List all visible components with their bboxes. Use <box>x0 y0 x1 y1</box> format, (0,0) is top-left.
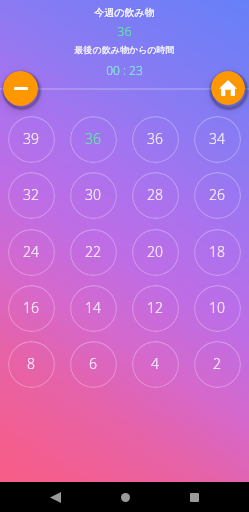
button[interactable]: 36 <box>70 116 117 163</box>
button[interactable]: 36 <box>132 116 179 163</box>
button[interactable]: Home <box>110 482 140 512</box>
staticText: 18 <box>209 242 225 261</box>
button[interactable]: Remove a drink <box>3 71 38 106</box>
staticText: 26 <box>209 185 225 204</box>
staticText: 24 <box>23 242 39 261</box>
staticText: 8 <box>27 354 35 373</box>
staticText: 22 <box>85 242 101 261</box>
button[interactable]: 10 <box>194 285 241 332</box>
staticText: 20 <box>147 242 163 261</box>
staticText: 36 <box>85 129 101 148</box>
staticText: 14 <box>85 298 101 317</box>
staticText: 28 <box>147 185 163 204</box>
staticText: 12 <box>147 298 163 317</box>
button[interactable]: 26 <box>194 172 241 219</box>
staticText: 6 <box>89 354 97 373</box>
button[interactable]: 14 <box>70 285 117 332</box>
button[interactable]: 20 <box>132 229 179 276</box>
button[interactable]: 18 <box>194 229 241 276</box>
staticText: 39 <box>23 129 39 148</box>
button[interactable]: 39 <box>8 116 55 163</box>
staticText: 34 <box>209 129 225 148</box>
staticText: 32 <box>23 185 39 204</box>
staticText: 30 <box>85 185 101 204</box>
button[interactable]: 16 <box>8 285 55 332</box>
button[interactable]: Back <box>40 482 70 512</box>
button[interactable]: 30 <box>70 172 117 219</box>
button[interactable]: 24 <box>8 229 55 276</box>
button[interactable]: Recent apps <box>179 482 209 512</box>
button[interactable]: 2 <box>194 341 241 388</box>
button[interactable]: 8 <box>8 341 55 388</box>
staticText: 最後の飲み物からの時間 <box>0 44 249 55</box>
button[interactable]: 6 <box>70 341 117 388</box>
button[interactable]: 34 <box>194 116 241 163</box>
staticText: 今週の飲み物 <box>0 6 249 19</box>
staticText: 36 <box>0 23 249 40</box>
staticText: 10 <box>209 298 225 317</box>
staticText: 00 : 23 <box>0 62 249 78</box>
staticText: 4 <box>151 354 159 373</box>
staticText: 16 <box>23 298 39 317</box>
staticText: 36 <box>147 129 163 148</box>
button[interactable]: 28 <box>132 172 179 219</box>
button[interactable]: 12 <box>132 285 179 332</box>
button[interactable]: 4 <box>132 341 179 388</box>
button[interactable]: 32 <box>8 172 55 219</box>
button[interactable]: 22 <box>70 229 117 276</box>
staticText: 2 <box>213 354 221 373</box>
button[interactable]: Home <box>211 71 245 105</box>
